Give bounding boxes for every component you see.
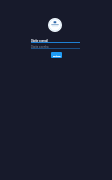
button[interactable] bbox=[31, 44, 80, 49]
staticText: Digite a senha bbox=[31, 45, 49, 49]
other: Institute logo bbox=[48, 18, 62, 32]
button[interactable] bbox=[31, 38, 80, 43]
staticText: Entrar bbox=[53, 54, 61, 57]
button[interactable]: Entrar bbox=[51, 52, 62, 58]
staticText: Digite o email bbox=[31, 39, 48, 43]
